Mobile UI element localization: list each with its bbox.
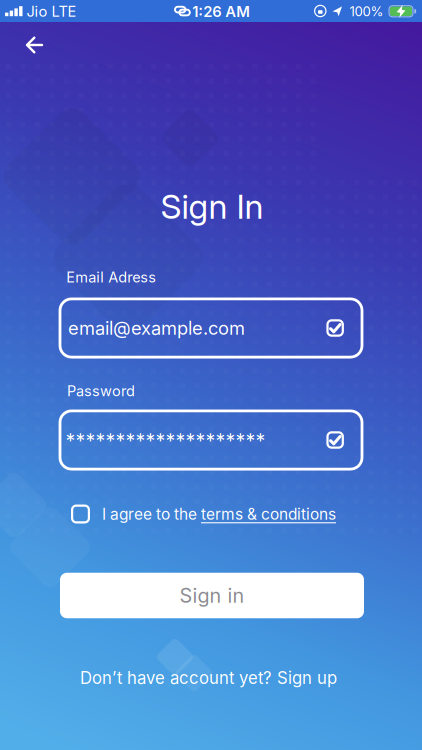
staticText: Jio LTE: [26, 3, 76, 20]
staticText: I agree to the: [102, 505, 201, 523]
staticText: Sign In: [160, 186, 263, 227]
staticText: terms & conditions: [201, 505, 336, 523]
button[interactable]: I agree to the: [71, 504, 336, 523]
staticText: Don’t have account yet? Sign up: [80, 668, 337, 688]
staticText: 100%: [349, 3, 383, 19]
staticText: email@example.com: [68, 317, 245, 339]
button[interactable]: Back: [15, 27, 53, 63]
staticText: Sign in: [179, 583, 244, 607]
staticText: Password: [67, 382, 135, 400]
button[interactable]: Don’t have account yet? Sign up: [80, 668, 337, 688]
button[interactable]: Sign in: [60, 573, 364, 618]
staticText: 1:26 AM: [192, 2, 250, 20]
staticText: ********************: [66, 429, 266, 453]
staticText: Email Adress: [66, 268, 156, 286]
